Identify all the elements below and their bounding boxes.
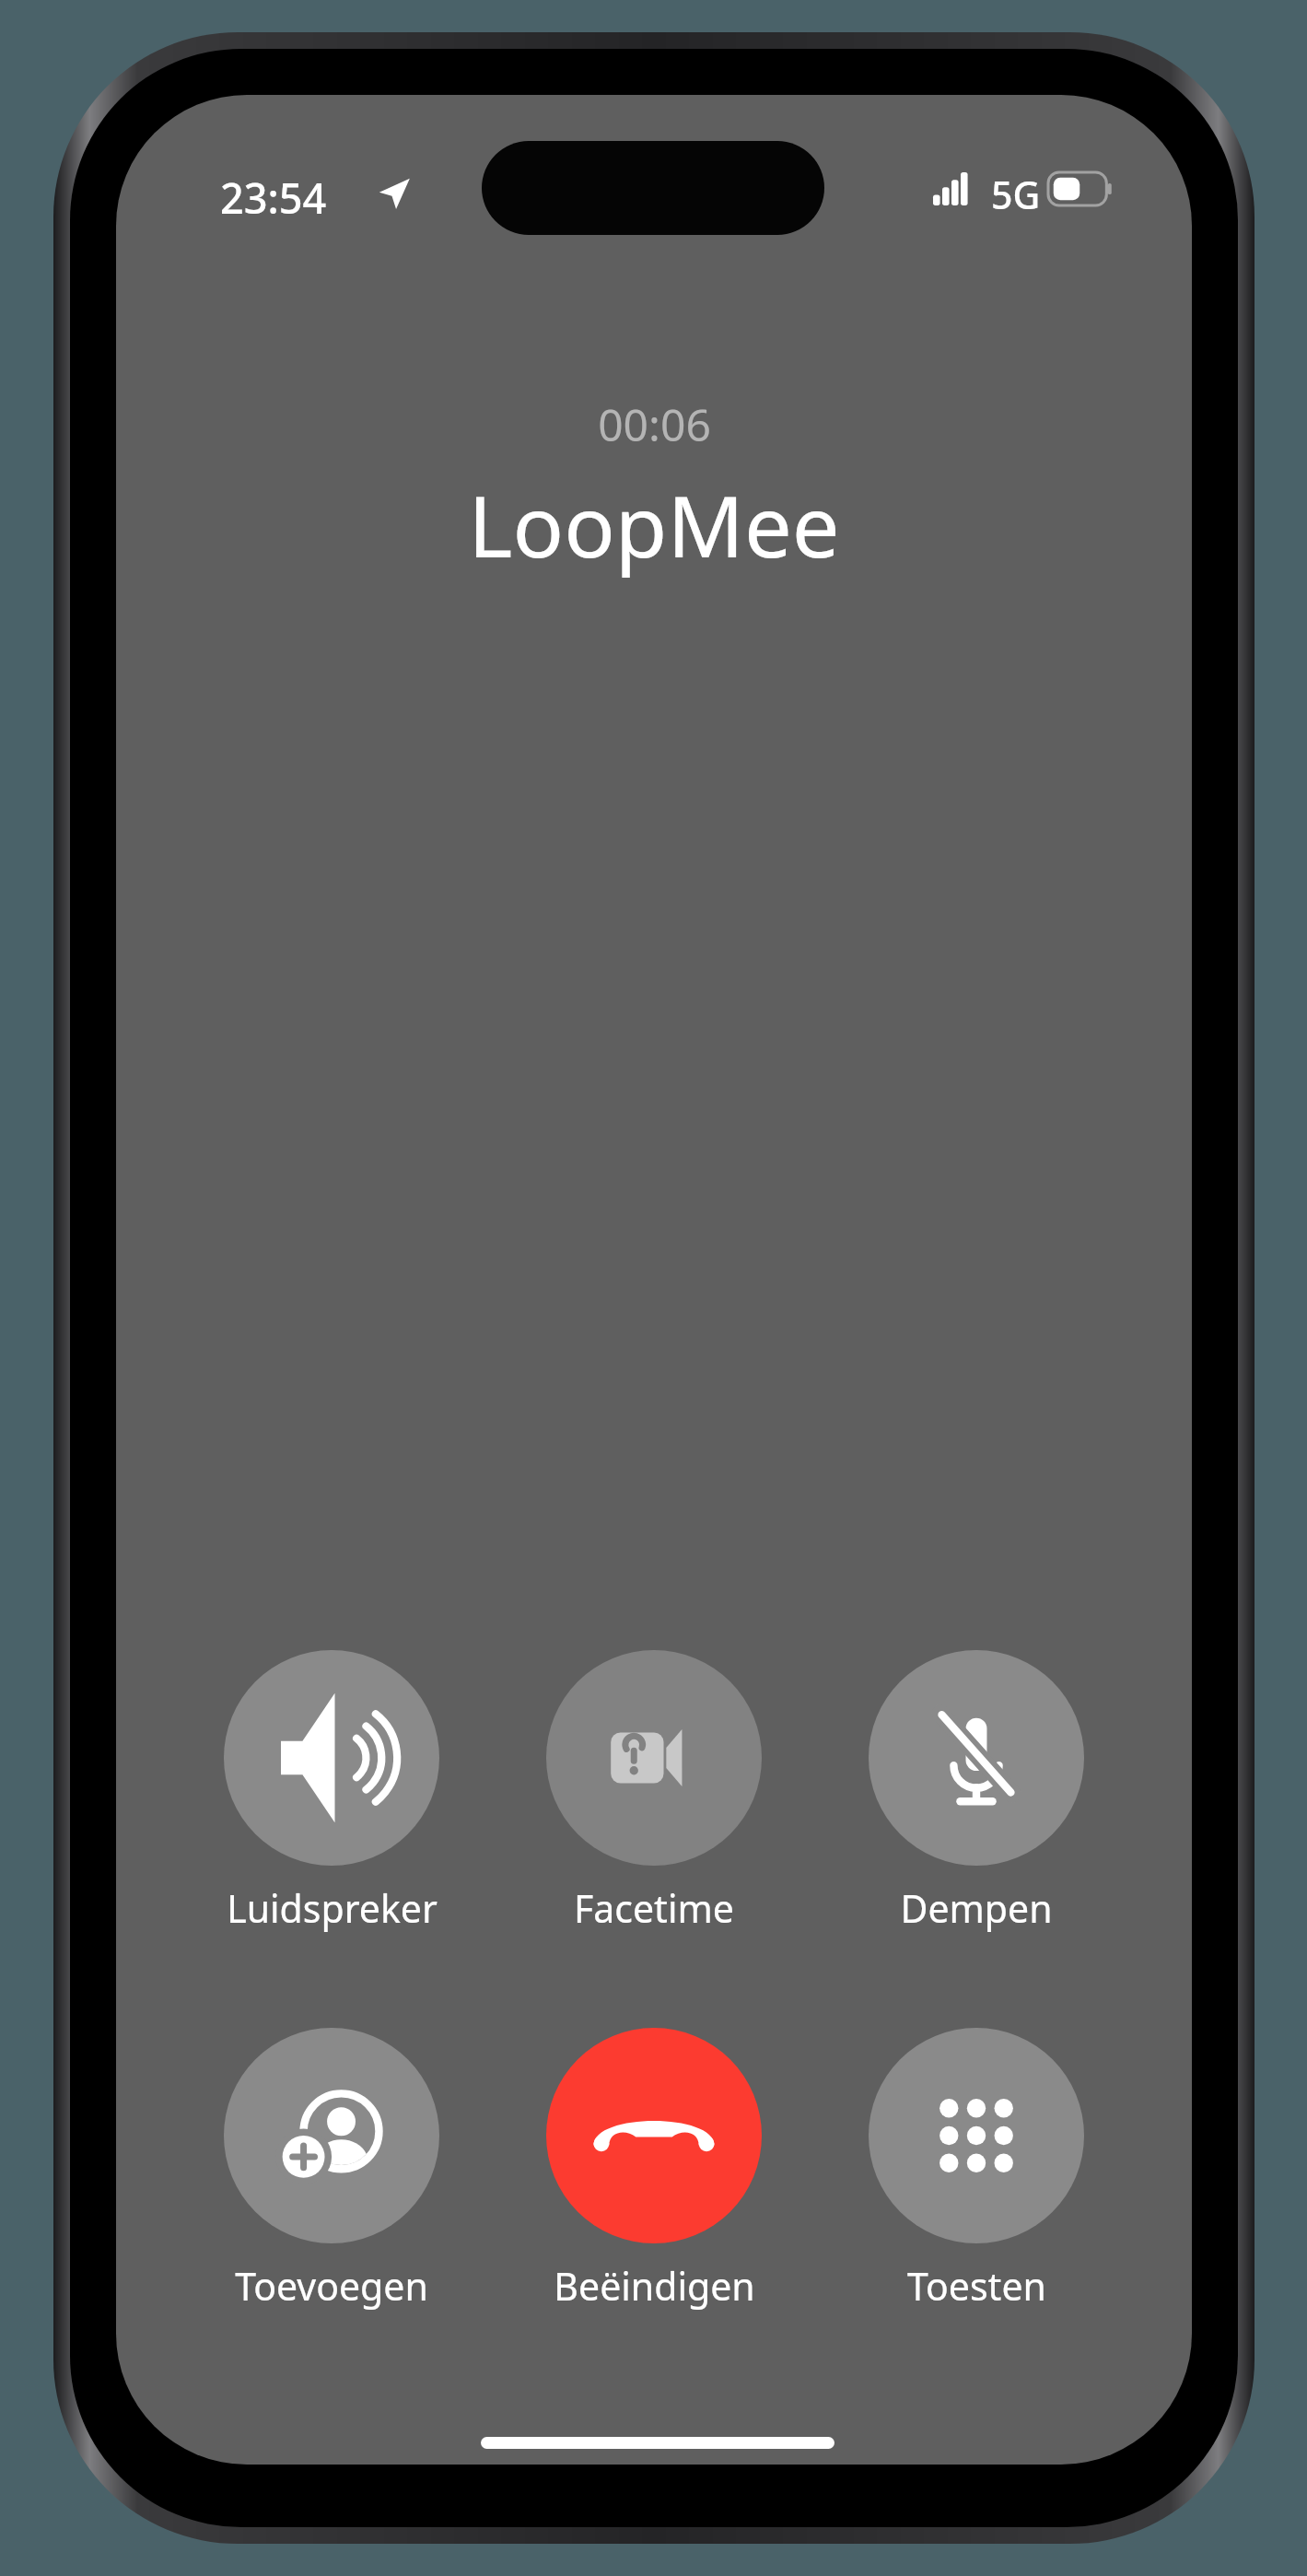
staticText: Dempen bbox=[900, 1882, 1053, 1934]
staticText: Facetime bbox=[574, 1882, 734, 1934]
staticText: 23:54 bbox=[220, 170, 327, 226]
button[interactable]: Luidspreker bbox=[224, 1650, 439, 1934]
staticText: Toesten bbox=[907, 2260, 1046, 2312]
staticText: Toevoegen bbox=[235, 2260, 428, 2312]
staticText: Beëindigen bbox=[554, 2260, 755, 2312]
staticText: Luidspreker bbox=[227, 1882, 438, 1934]
button[interactable]: Facetime bbox=[546, 1650, 762, 1934]
button[interactable]: Toesten bbox=[869, 2028, 1084, 2312]
button[interactable]: Toevoegen bbox=[224, 2028, 439, 2312]
staticText: LoopMee bbox=[468, 467, 840, 582]
staticText: 00:06 bbox=[598, 394, 711, 454]
button[interactable]: Dempen bbox=[869, 1650, 1084, 1934]
staticText: 5G bbox=[991, 169, 1041, 220]
button[interactable]: Beëindigen bbox=[546, 2028, 762, 2312]
